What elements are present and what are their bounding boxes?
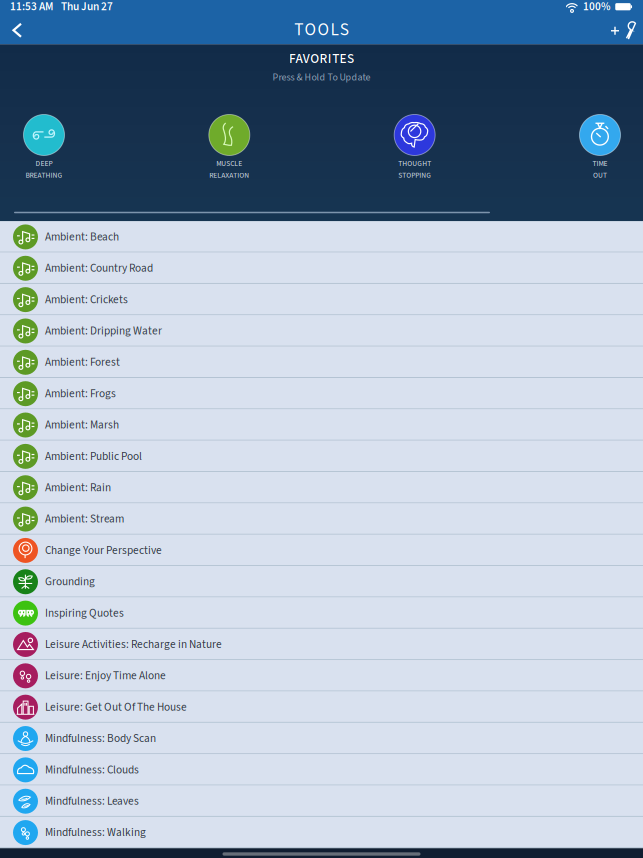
staticText: Ambient: Rain bbox=[45, 480, 111, 496]
button[interactable]: Ambient: Beach bbox=[0, 221, 643, 253]
button[interactable]: Back bbox=[4, 15, 34, 44]
button[interactable]: Leisure: Get Out Of The House bbox=[0, 691, 643, 723]
button[interactable]: TIME bbox=[568, 114, 632, 181]
button[interactable]: Change Your Perspective bbox=[0, 535, 643, 566]
button[interactable]: Ambient: Rain bbox=[0, 472, 643, 503]
staticText: RELAXATION bbox=[209, 170, 249, 181]
staticText: Ambient: Country Road bbox=[45, 260, 153, 276]
button[interactable]: Ambient: Marsh bbox=[0, 409, 643, 441]
staticText: Ambient: Frogs bbox=[45, 386, 116, 402]
staticText: Ambient: Stream bbox=[45, 511, 124, 527]
button[interactable]: Ambient: Forest bbox=[0, 347, 643, 378]
staticText: TOOLS bbox=[294, 17, 349, 42]
staticText: Leisure Activities: Recharge in Nature bbox=[45, 636, 222, 652]
staticText: Mindfulness: Walking bbox=[45, 824, 146, 841]
button[interactable]: Inspiring Quotes bbox=[0, 597, 643, 629]
staticText: Ambient: Beach bbox=[45, 229, 119, 245]
staticText: BREATHING bbox=[25, 170, 62, 181]
button[interactable]: DEEP bbox=[12, 114, 76, 181]
staticText: Thu Jun 27 bbox=[61, 0, 113, 15]
button[interactable]: Ambient: Dripping Water bbox=[0, 315, 643, 347]
button[interactable]: Mindfulness: Walking bbox=[0, 817, 643, 848]
staticText: FAVORITES bbox=[289, 49, 354, 68]
staticText: Leisure: Get Out Of The House bbox=[45, 699, 187, 715]
staticText: Ambient: Dripping Water bbox=[45, 323, 162, 339]
button[interactable]: Leisure: Enjoy Time Alone bbox=[0, 660, 643, 691]
button[interactable]: Ambient: Country Road bbox=[0, 253, 643, 284]
button[interactable]: Ambient: Public Pool bbox=[0, 441, 643, 472]
button[interactable]: Add tool bbox=[605, 15, 639, 44]
button[interactable]: Ambient: Crickets bbox=[0, 284, 643, 315]
button[interactable]: Mindfulness: Leaves bbox=[0, 786, 643, 817]
staticText: Leisure: Enjoy Time Alone bbox=[45, 668, 166, 684]
button[interactable]: MUSCLE bbox=[197, 114, 261, 181]
button[interactable]: Ambient: Frogs bbox=[0, 378, 643, 409]
staticText: Inspiring Quotes bbox=[45, 605, 124, 621]
staticText: Change Your Perspective bbox=[45, 542, 162, 558]
staticText: TIME bbox=[592, 158, 607, 169]
button[interactable]: Grounding bbox=[0, 566, 643, 597]
staticText: Mindfulness: Clouds bbox=[45, 762, 139, 778]
button[interactable]: Mindfulness: Body Scan bbox=[0, 723, 643, 754]
button[interactable]: Mindfulness: Clouds bbox=[0, 754, 643, 786]
staticText: MUSCLE bbox=[216, 158, 242, 169]
button[interactable]: Leisure Activities: Recharge in Nature bbox=[0, 629, 643, 660]
staticText: Ambient: Public Pool bbox=[45, 448, 142, 464]
staticText: THOUGHT bbox=[398, 158, 431, 169]
button[interactable]: Ambient: Stream bbox=[0, 503, 643, 535]
staticText: Press & Hold To Update bbox=[272, 70, 370, 84]
staticText: STOPPING bbox=[398, 170, 431, 181]
staticText: OUT bbox=[593, 170, 607, 181]
staticText: Mindfulness: Leaves bbox=[45, 793, 139, 809]
staticText: DEEP bbox=[35, 158, 52, 169]
staticText: 11:53 AM bbox=[10, 0, 53, 15]
staticText: Ambient: Marsh bbox=[45, 417, 119, 433]
staticText: Grounding bbox=[45, 574, 95, 590]
staticText: Ambient: Crickets bbox=[45, 292, 128, 308]
staticText: Mindfulness: Body Scan bbox=[45, 730, 156, 747]
button[interactable]: THOUGHT bbox=[383, 114, 447, 181]
staticText: Ambient: Forest bbox=[45, 354, 120, 370]
staticText: 100% bbox=[583, 0, 611, 15]
